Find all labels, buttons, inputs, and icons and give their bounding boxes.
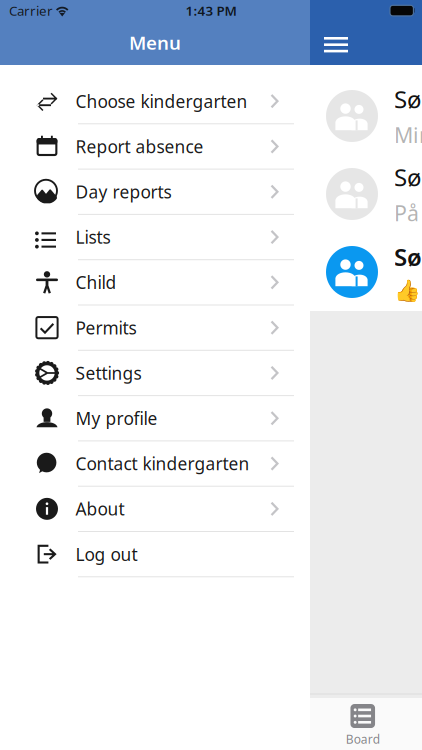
staticText: Menu [129, 30, 181, 55]
button[interactable]: My profile [0, 396, 310, 441]
staticText: Report absence [75, 135, 203, 158]
staticText: My profile [75, 407, 157, 430]
staticText: Permits [75, 316, 136, 339]
button[interactable]: Report absence [0, 124, 310, 170]
staticText: Minn [394, 121, 422, 149]
staticText: 1:43 PM [185, 2, 236, 19]
button[interactable]: Day reports [0, 170, 310, 215]
button[interactable]: Sørs [310, 155, 422, 233]
button[interactable]: Log out [0, 532, 310, 577]
button[interactable]: Sør [310, 233, 422, 311]
staticText: Log out [75, 543, 137, 566]
button[interactable]: Settings [0, 351, 310, 396]
button[interactable]: Contact kindergarten [0, 441, 310, 487]
staticText: Carrier [9, 2, 53, 19]
button[interactable]: Board [310, 704, 415, 746]
staticText: Choose kindergarten [75, 90, 247, 113]
staticText: Board [346, 731, 380, 747]
staticText: Contact kindergarten [75, 452, 249, 475]
staticText: Sørs [394, 83, 422, 115]
staticText: Sørs [394, 161, 422, 193]
button[interactable]: Child [0, 260, 310, 305]
staticText: 👍 [394, 279, 421, 303]
staticText: About [75, 497, 124, 520]
staticText: Settings [75, 361, 141, 384]
button[interactable]: Lists [0, 215, 310, 260]
button[interactable]: Permits [0, 305, 310, 351]
button[interactable]: Menu [310, 25, 362, 65]
button[interactable]: Choose kindergarten [0, 79, 310, 124]
button[interactable]: About [0, 487, 310, 532]
staticText: Child [75, 271, 116, 294]
staticText: Sør [394, 241, 422, 273]
staticText: Day reports [75, 180, 171, 203]
staticText: Lists [75, 225, 110, 248]
button[interactable]: Sørs [310, 77, 422, 155]
staticText: På g [394, 199, 422, 227]
